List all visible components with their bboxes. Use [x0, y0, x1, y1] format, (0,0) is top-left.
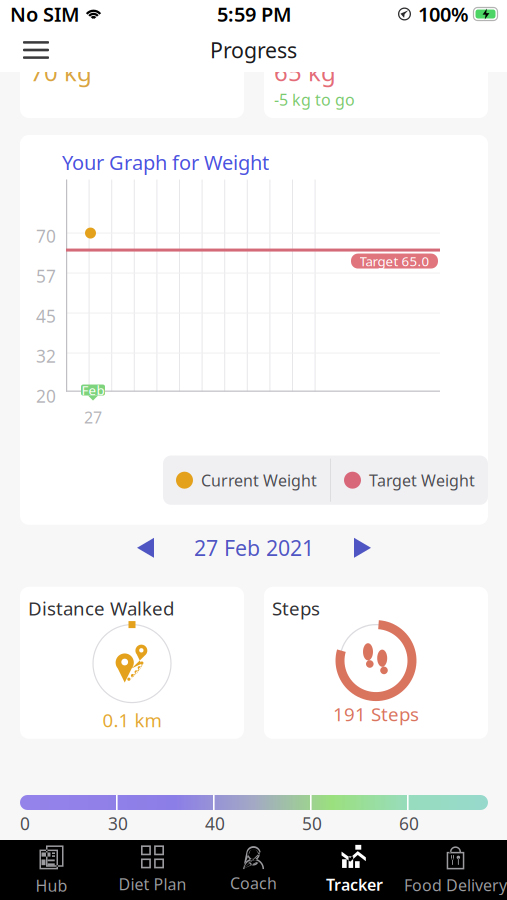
- button[interactable]: Next day: [340, 528, 385, 568]
- button[interactable]: Steps: [264, 587, 488, 739]
- staticText: Food Delivery: [404, 874, 507, 896]
- staticText: 100%: [418, 1, 469, 27]
- staticText: No SIM: [10, 1, 80, 27]
- staticText: 20: [36, 385, 56, 408]
- staticText: Target 65.0: [359, 252, 429, 270]
- staticText: Tracker: [326, 874, 383, 895]
- button[interactable]: Diet Plan: [102, 840, 203, 900]
- staticText: 0.1 km: [102, 708, 161, 732]
- staticText: Your Graph for Weight: [62, 149, 269, 176]
- staticText: 0: [20, 812, 30, 835]
- staticText: Coach: [230, 872, 277, 894]
- staticText: Diet Plan: [118, 873, 186, 895]
- staticText: Progress: [210, 36, 297, 64]
- staticText: 50: [302, 812, 322, 835]
- staticText: 27 Feb 2021: [194, 534, 314, 562]
- staticText: 191 Steps: [333, 702, 419, 726]
- staticText: 5:59 PM: [217, 1, 292, 27]
- staticText: 30: [108, 812, 128, 835]
- button[interactable]: Coach: [203, 840, 304, 900]
- staticText: Feb: [81, 381, 104, 399]
- button[interactable]: Food Delivery: [405, 840, 506, 900]
- staticText: 57: [36, 265, 56, 288]
- button[interactable]: Menu: [12, 28, 60, 72]
- staticText: 65 kg: [274, 56, 336, 88]
- staticText: Current Weight: [201, 470, 317, 491]
- staticText: 70: [36, 225, 56, 248]
- staticText: Distance Walked: [28, 596, 174, 621]
- button[interactable]: Previous day: [123, 528, 168, 568]
- staticText: 60: [399, 812, 419, 835]
- staticText: 32: [36, 345, 56, 368]
- staticText: 70 kg: [30, 56, 92, 88]
- staticText: 45: [36, 305, 56, 328]
- staticText: 40: [205, 812, 225, 835]
- button[interactable]: Distance Walked: [20, 587, 244, 739]
- staticText: 27: [84, 407, 102, 428]
- staticText: Steps: [272, 596, 320, 621]
- staticText: Hub: [35, 875, 67, 896]
- staticText: Target Weight: [369, 470, 475, 491]
- button[interactable]: Tracker: [304, 840, 405, 900]
- button[interactable]: Hub: [1, 840, 102, 900]
- staticText: -5 kg to go: [274, 89, 355, 110]
